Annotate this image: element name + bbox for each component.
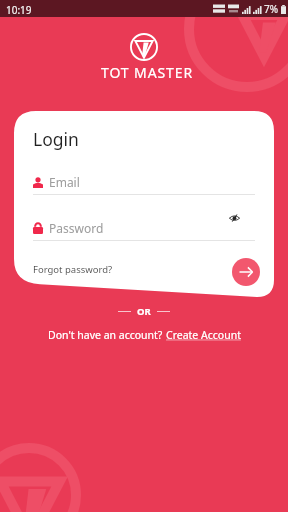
staticText: 10:19	[6, 3, 32, 17]
staticText: OR	[137, 305, 151, 318]
button[interactable]: Create Account	[166, 328, 241, 342]
button[interactable]: Toggle password visibility	[221, 207, 247, 229]
staticText: Email	[49, 174, 80, 190]
button[interactable]: Sign in	[232, 258, 260, 286]
staticText: Don't have an account?	[48, 328, 166, 342]
staticText: 7%	[264, 2, 279, 16]
button[interactable]: Forgot password?	[33, 263, 113, 276]
staticText: TOT MASTER	[101, 63, 194, 82]
staticText: Password	[49, 220, 104, 236]
staticText: Login	[33, 127, 79, 151]
